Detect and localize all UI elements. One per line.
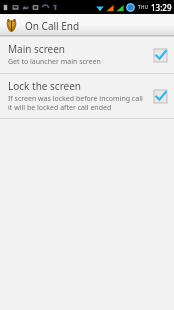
other: Toggle setting [152, 88, 168, 104]
staticText: Get to launcher main screen [8, 57, 101, 67]
button[interactable]: Main screen [0, 37, 174, 73]
staticText: THU [138, 4, 149, 11]
staticText: Lock the screen [8, 79, 82, 93]
button[interactable]: Lock the screen [0, 74, 174, 118]
staticText: If screen was locked before incoming cal… [8, 94, 146, 112]
staticText: On Call End [25, 19, 80, 33]
staticText: 13:29 [151, 2, 172, 13]
other: Toggle setting [152, 47, 168, 63]
staticText: Main screen [8, 42, 66, 56]
